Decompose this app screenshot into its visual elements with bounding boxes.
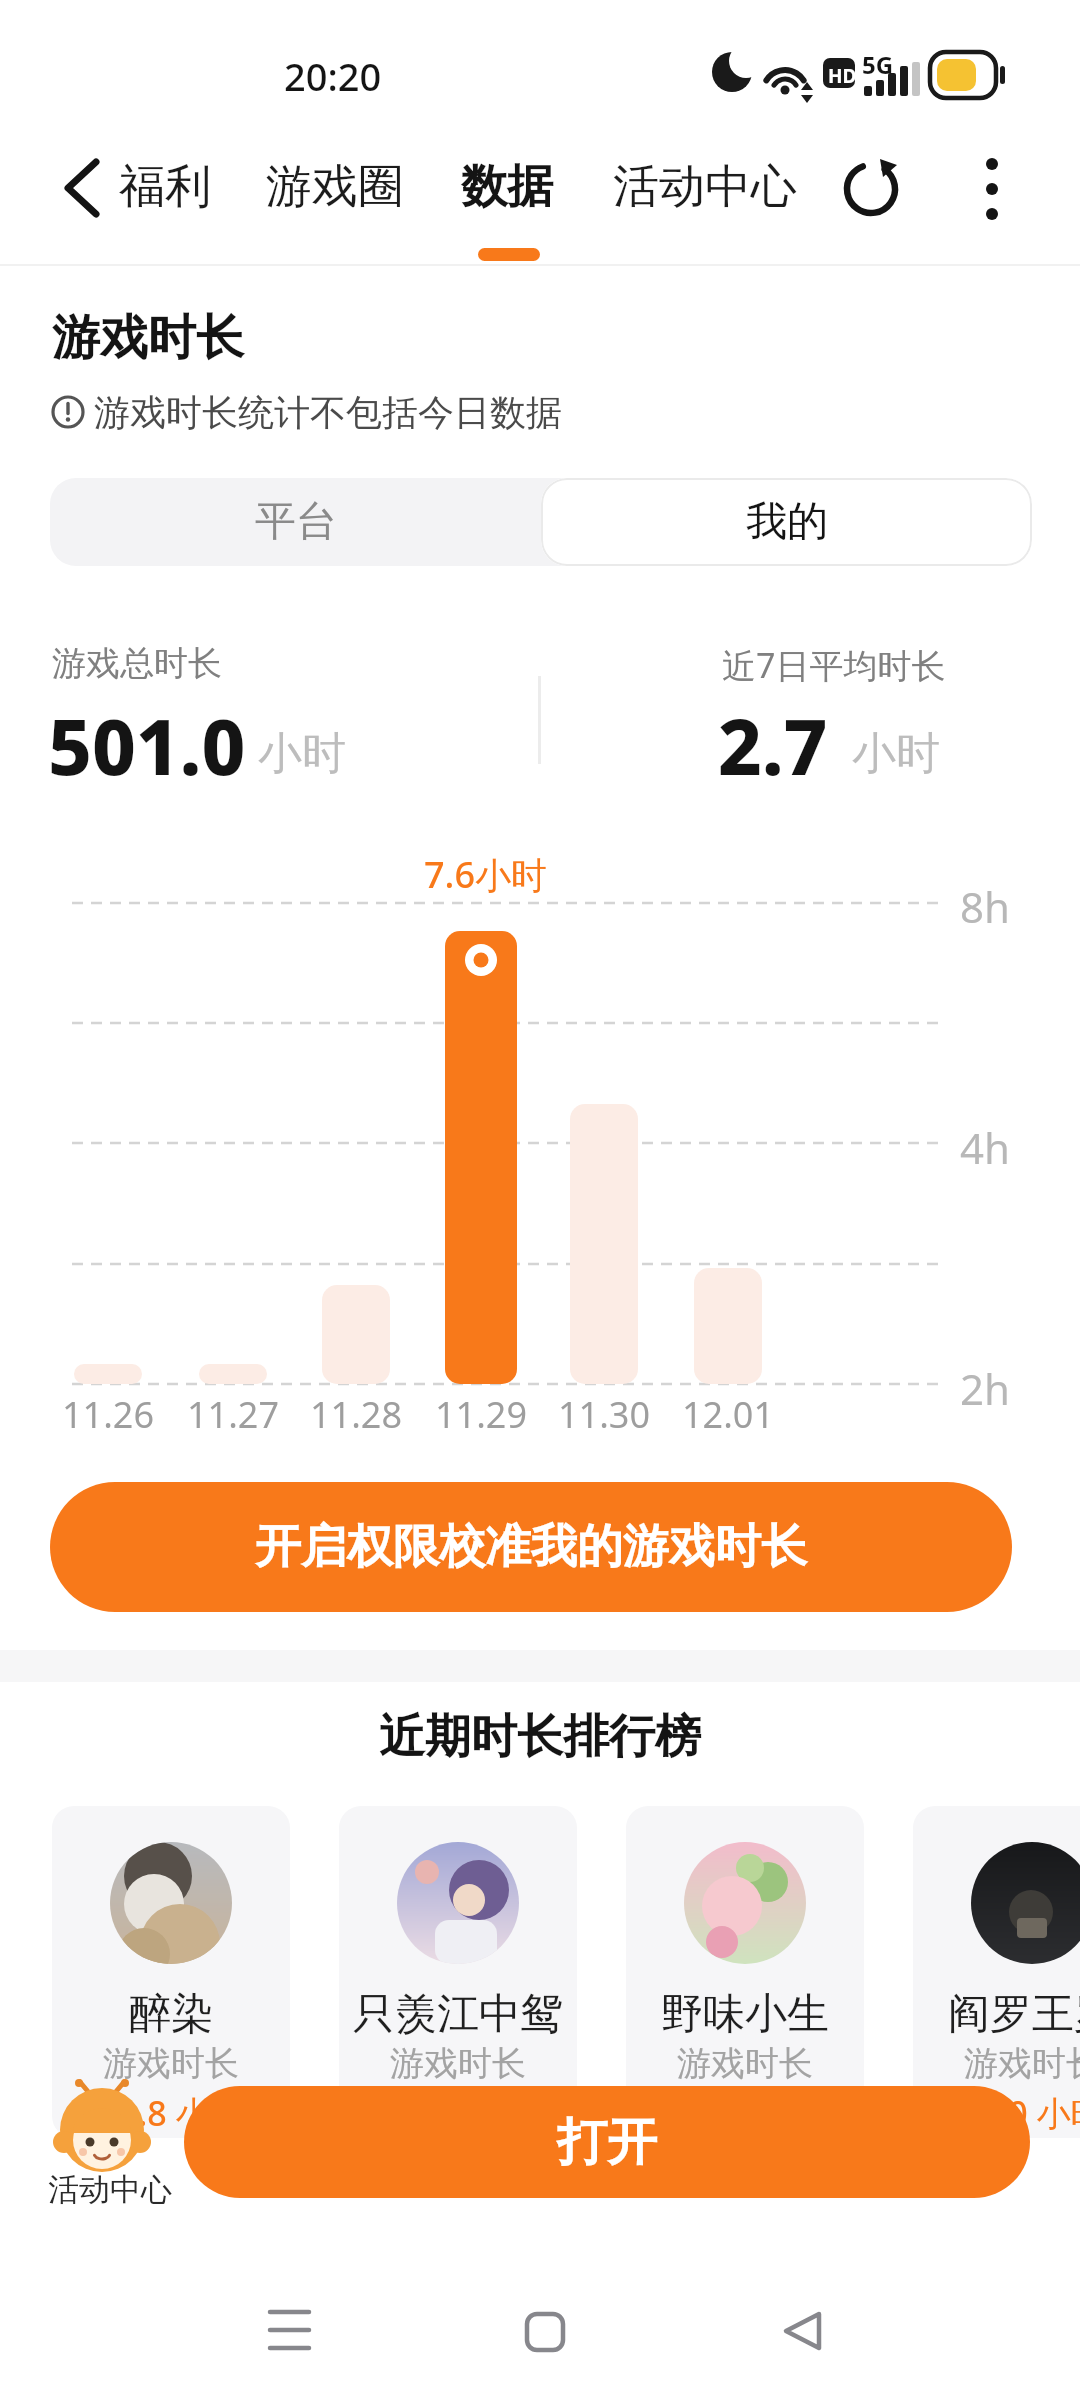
staticText: 打开 (557, 2111, 657, 2174)
staticText: 游戏时长 (52, 308, 244, 368)
button[interactable] (840, 158, 902, 220)
staticText: 小时 (852, 726, 940, 781)
staticText: 游戏时长 (103, 2042, 239, 2085)
staticText: 7.6小时 (424, 850, 547, 899)
staticText: 11.26 (62, 1390, 155, 1439)
button[interactable]: 阎罗王罗 (913, 1806, 1080, 2138)
staticText: 11.30 (558, 1390, 651, 1439)
staticText: 游戏时长 (390, 2042, 526, 2085)
staticText: 501.0 (48, 694, 246, 798)
button[interactable]: 数据 (461, 158, 553, 216)
staticText: 11.27 (187, 1390, 280, 1439)
button[interactable]: 活动中心 (613, 158, 797, 216)
button[interactable]: 醉染 (52, 1806, 290, 2138)
staticText: 游戏总时长 (52, 642, 222, 685)
staticText: 醉染 (129, 1988, 213, 2041)
staticText: 11.29 (435, 1390, 528, 1439)
staticText: 10.8 小时 (99, 2090, 244, 2136)
staticText: 5G (862, 48, 894, 81)
staticText: 小时 (258, 726, 346, 781)
button[interactable]: 平台 (50, 478, 541, 566)
staticText: 开启权限校准我的游戏时长 (255, 1518, 807, 1576)
staticText: 活动中心 (48, 2170, 172, 2209)
staticText: 8h (960, 878, 1010, 935)
staticText: 10.0 小时 (960, 2090, 1080, 2136)
button[interactable] (495, 2292, 595, 2368)
staticText: 游戏时长 (964, 2042, 1080, 2085)
staticText: 平台 (255, 496, 337, 548)
button[interactable]: 我的 (541, 478, 1032, 566)
staticText: 2h (960, 1360, 1010, 1417)
button[interactable]: 打开 (184, 2086, 1030, 2198)
button[interactable]: 野味小生 (626, 1806, 864, 2138)
staticText: 近期时长排行榜 (379, 1708, 701, 1766)
button[interactable] (972, 152, 1012, 228)
button[interactable] (755, 2292, 855, 2368)
staticText: 野味小生 (661, 1988, 829, 2041)
staticText: 阎罗王罗 (948, 1988, 1080, 2041)
staticText: 只羡江中鸳 (353, 1988, 563, 2041)
button[interactable]: 游戏圈 (266, 158, 404, 216)
button[interactable]: 只羡江中鸳 (339, 1806, 577, 2138)
button[interactable] (240, 2292, 340, 2368)
staticText: 我的 (746, 496, 828, 548)
staticText: 游戏时长统计不包括今日数据 (94, 390, 562, 435)
staticText: HD (828, 63, 857, 89)
staticText: 12.01 (682, 1390, 775, 1439)
staticText: 游戏时长 (677, 2042, 813, 2085)
staticText: 20:20 (284, 50, 382, 102)
button[interactable] (56, 150, 116, 226)
button[interactable]: 开启权限校准我的游戏时长 (50, 1482, 1012, 1612)
staticText: 2.7 (718, 694, 828, 798)
staticText: 近7日平均时长 (722, 642, 946, 688)
staticText: 4h (960, 1119, 1010, 1176)
staticText: 11.28 (310, 1390, 403, 1439)
button[interactable]: 福利 (119, 158, 211, 216)
